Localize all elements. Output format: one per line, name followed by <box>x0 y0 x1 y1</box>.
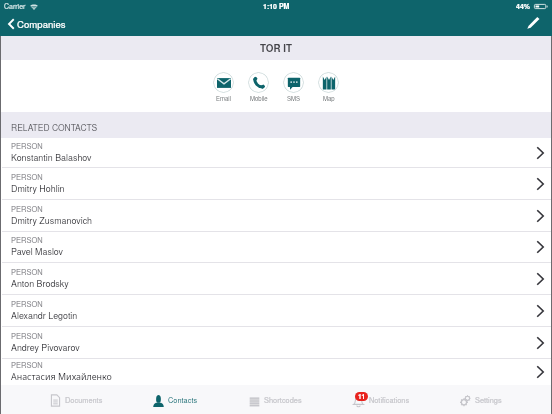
staticText: Contacts <box>168 395 198 406</box>
staticText: Анастасия Михайленко <box>11 370 112 383</box>
button[interactable]: Email <box>210 72 237 103</box>
staticText: PERSON <box>11 234 43 245</box>
button[interactable]: Contacts <box>153 386 198 414</box>
button[interactable]: Settings <box>460 386 502 414</box>
button[interactable]: PERSON <box>0 295 552 326</box>
staticText: Map <box>323 94 335 103</box>
button[interactable]: PERSON <box>0 200 552 231</box>
button[interactable]: PERSON <box>0 359 552 385</box>
button[interactable]: PERSON <box>0 232 552 262</box>
button[interactable]: PERSON <box>0 327 552 358</box>
staticText: 44% <box>516 1 531 11</box>
staticText: Mobile <box>250 94 268 103</box>
staticText: PERSON <box>11 171 43 182</box>
staticText: 1:10 PM <box>263 1 290 11</box>
staticText: Documents <box>65 395 103 406</box>
staticText: Anton Brodsky <box>11 277 69 290</box>
staticText: Email <box>216 94 232 103</box>
staticText: Alexandr Legotin <box>11 309 78 322</box>
button[interactable]: SMS <box>280 72 307 103</box>
staticText: PERSON <box>11 203 43 214</box>
staticText: SMS <box>287 94 301 103</box>
staticText: Pavel Maslov <box>11 245 64 258</box>
staticText: Shortcodes <box>264 395 302 406</box>
staticText: Andrey Pivovarov <box>11 341 80 354</box>
staticText: PERSON <box>11 140 43 151</box>
button[interactable]: Shortcodes <box>249 386 302 414</box>
staticText: Notifications <box>369 395 410 406</box>
button[interactable]: Documents <box>50 386 103 414</box>
button[interactable]: Mobile <box>245 72 272 103</box>
staticText: 11 <box>358 392 366 401</box>
staticText: Dmitry Zusmanovich <box>11 214 93 227</box>
button[interactable]: 11 <box>352 386 410 414</box>
staticText: TOR IT <box>260 41 292 55</box>
staticText: Konstantin Balashov <box>11 151 92 164</box>
button[interactable]: PERSON <box>0 138 552 167</box>
button[interactable]: Edit <box>527 16 540 29</box>
staticText: Settings <box>475 395 502 406</box>
staticText: Dmitry Hohlin <box>11 182 65 195</box>
button[interactable]: Map <box>315 72 342 103</box>
staticText: RELATED CONTACTS <box>11 121 98 133</box>
button[interactable]: PERSON <box>0 168 552 199</box>
staticText: PERSON <box>11 330 43 341</box>
button[interactable]: Companies <box>0 17 74 31</box>
staticText: PERSON <box>11 298 43 309</box>
staticText: PERSON <box>11 266 43 277</box>
staticText: PERSON <box>11 359 43 370</box>
button[interactable]: PERSON <box>0 263 552 294</box>
staticText: Carrier <box>4 1 26 11</box>
staticText: Companies <box>17 17 66 31</box>
